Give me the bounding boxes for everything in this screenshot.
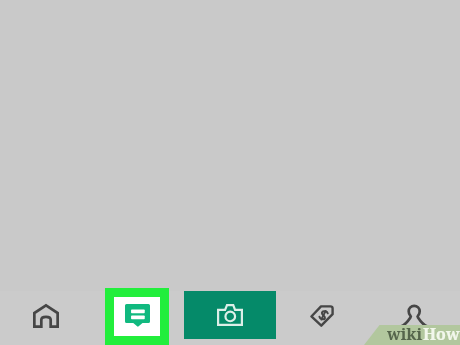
- button[interactable]: Messages: [92, 291, 184, 345]
- button[interactable]: Home: [0, 291, 92, 345]
- button[interactable]: Camera: [184, 291, 276, 345]
- button[interactable]: Offers: [276, 291, 368, 345]
- staticText: wiki: [387, 323, 423, 343]
- staticText: How: [423, 323, 460, 343]
- button[interactable]: Profile: [368, 291, 460, 345]
